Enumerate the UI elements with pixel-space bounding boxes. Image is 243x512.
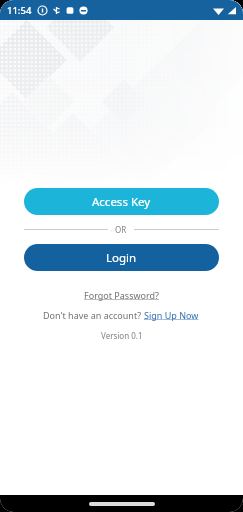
button[interactable]: Access Key — [24, 188, 219, 215]
button[interactable]: Sign Up Now — [144, 309, 201, 321]
staticText: 11:54 — [7, 4, 32, 17]
other: Home gesture — [89, 502, 155, 506]
staticText: Login — [106, 250, 137, 266]
staticText: Access Key — [92, 194, 151, 210]
button[interactable]: Forgot Password? — [84, 289, 159, 301]
staticText: OR — [115, 224, 127, 235]
staticText: Version 0.1 — [101, 330, 143, 341]
button[interactable]: Login — [24, 244, 219, 271]
staticText: Forgot Password? — [84, 289, 159, 301]
staticText: Don't have an account? — [43, 309, 144, 321]
staticText: Sign Up Now — [144, 309, 201, 321]
